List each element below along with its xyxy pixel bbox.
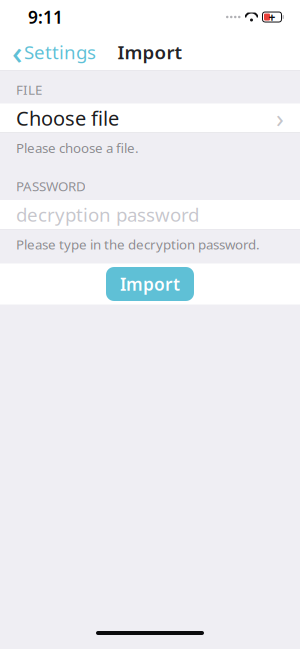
staticText: PASSWORD — [16, 177, 86, 195]
staticText: Please type in the decryption password. — [16, 235, 260, 253]
staticText: Settings — [24, 40, 96, 64]
staticText: + — [268, 9, 275, 25]
staticText: Choose file — [16, 105, 119, 131]
staticText: Import — [120, 272, 180, 295]
staticText: ‹ — [12, 31, 22, 73]
button[interactable]: Import — [106, 267, 194, 301]
staticText: Import — [117, 40, 182, 64]
staticText: › — [276, 101, 284, 135]
staticText: decryption password — [16, 202, 199, 227]
staticText: 9:11 — [28, 5, 63, 28]
button[interactable]: Choose file — [0, 103, 300, 132]
staticText: FILE — [16, 81, 42, 98]
staticText: Please choose a file. — [16, 139, 139, 157]
button[interactable]: Back to Settings — [4, 34, 104, 70]
button[interactable]: decryption password — [0, 200, 300, 229]
